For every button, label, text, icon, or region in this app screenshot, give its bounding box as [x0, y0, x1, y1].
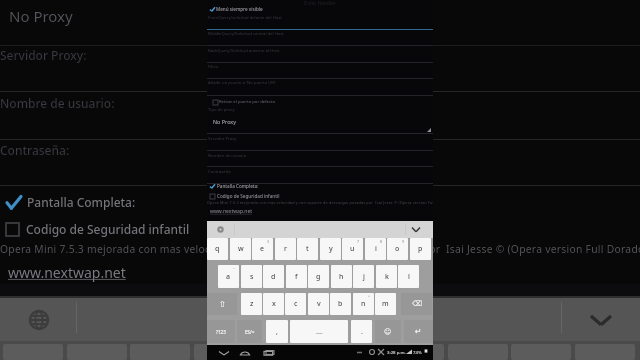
button[interactable]: Change language: [217, 226, 224, 233]
button[interactable]: Backspace: [401, 293, 432, 315]
button[interactable]: ES/=: [237, 320, 262, 343]
staticText: ~: [233, 266, 236, 271]
button[interactable]: k: [376, 265, 397, 288]
staticText: l: [408, 272, 410, 282]
staticText: Contraseña:: [0, 142, 70, 158]
button[interactable]: j: [353, 265, 374, 288]
staticText: www.nextwap.net: [210, 208, 253, 215]
button[interactable]: p: [410, 238, 431, 260]
button[interactable]: o: [387, 238, 408, 260]
button[interactable]: v: [308, 293, 329, 315]
button[interactable]: d: [263, 265, 284, 288]
staticText: x: [272, 299, 276, 309]
staticText: z: [250, 299, 254, 309]
button[interactable]: Back: [219, 348, 229, 358]
button[interactable]: z: [241, 293, 262, 315]
button[interactable]: Hide keyboard: [591, 310, 611, 330]
button[interactable]: y: [320, 238, 341, 260]
staticText: Codigo de Seguridad infantil: [217, 193, 280, 199]
staticText: 9: [402, 239, 405, 244]
button[interactable]: b: [330, 293, 351, 315]
button[interactable]: Recent apps: [264, 348, 274, 358]
button[interactable]: h: [331, 265, 352, 288]
staticText: ^: [368, 294, 371, 299]
staticText: ES/=: [245, 329, 255, 335]
button[interactable]: Enter: [404, 320, 433, 343]
staticText: u: [350, 244, 355, 254]
staticText: ☺: [384, 328, 392, 336]
button[interactable]: No Proxy: [207, 114, 433, 133]
button[interactable]: t: [297, 238, 318, 260]
button[interactable]: a: [218, 265, 239, 288]
staticText: q: [215, 244, 220, 254]
staticText: 8: [380, 239, 383, 244]
staticText: Opera Mini 7.5.3 mejorada con mas veloci…: [0, 242, 640, 256]
staticText: f: [295, 272, 298, 282]
staticText: o: [395, 244, 400, 254]
button[interactable]: Emoji: [375, 320, 401, 343]
button[interactable]: r: [275, 238, 296, 260]
staticText: k: [385, 272, 389, 282]
button[interactable]: .: [351, 320, 372, 343]
button[interactable]: Codigo de Seguridad infantil: [6, 221, 190, 237]
staticText: i: [375, 244, 377, 254]
staticText: Nombre de usuario:: [0, 95, 115, 111]
staticText: No Proxy: [213, 118, 236, 125]
button[interactable]: l: [398, 265, 419, 288]
button[interactable]: f: [286, 265, 307, 288]
staticText: b: [338, 299, 343, 309]
button[interactable]: www.nextwap.net: [210, 207, 254, 217]
staticText: ?123: [216, 329, 226, 335]
staticText: t: [306, 244, 309, 254]
button[interactable]: [384, 344, 444, 360]
button[interactable]: Pantalla Completa:: [209, 182, 264, 191]
button[interactable]: [257, 344, 317, 360]
button[interactable]: Retirar el puerto por defecto: [212, 98, 302, 106]
button[interactable]: g: [308, 265, 329, 288]
staticText: a: [226, 272, 231, 282]
button[interactable]: Change language: [30, 311, 48, 329]
button[interactable]: Home: [240, 348, 250, 358]
button[interactable]: x: [263, 293, 284, 315]
button[interactable]: Space: [290, 320, 348, 343]
button[interactable]: n: [353, 293, 374, 315]
button[interactable]: m: [375, 293, 396, 315]
button[interactable]: c: [285, 293, 306, 315]
staticText: ↵: [415, 327, 422, 336]
button[interactable]: ,: [266, 320, 288, 343]
staticText: www.nextwap.net: [8, 263, 126, 282]
button[interactable]: q: [207, 238, 228, 260]
button[interactable]: e: [252, 238, 273, 260]
staticText: Nombre de usuario: [208, 153, 247, 159]
staticText: m: [382, 299, 389, 309]
button[interactable]: i: [365, 238, 386, 260]
button[interactable]: Shift: [207, 293, 237, 315]
staticText: Codigo de Seguridad infantil: [26, 221, 190, 237]
staticText: ___: [316, 328, 323, 335]
button[interactable]: ?123: [207, 320, 235, 343]
button[interactable]: Codigo de Seguridad infantil: [209, 192, 279, 201]
staticText: j: [363, 272, 365, 282]
staticText: Menú siempre visible: [216, 6, 263, 12]
staticText: p: [418, 244, 423, 254]
button[interactable]: [194, 344, 254, 360]
staticText: n: [361, 299, 366, 309]
button[interactable]: Hide keyboard: [412, 226, 420, 234]
staticText: ⌫: [412, 300, 422, 308]
button[interactable]: u: [342, 238, 363, 260]
staticText: y: [329, 244, 333, 254]
button[interactable]: [321, 344, 381, 360]
staticText: BackQuery/Solicitud anterior al Host: [208, 48, 280, 54]
button[interactable]: w: [230, 238, 251, 260]
staticText: v: [317, 299, 321, 309]
button[interactable]: s: [241, 265, 262, 288]
staticText: 3: [267, 239, 270, 244]
button[interactable]: Pantalla Completa:: [6, 194, 136, 210]
button[interactable]: Menú siempre visible: [209, 5, 271, 14]
